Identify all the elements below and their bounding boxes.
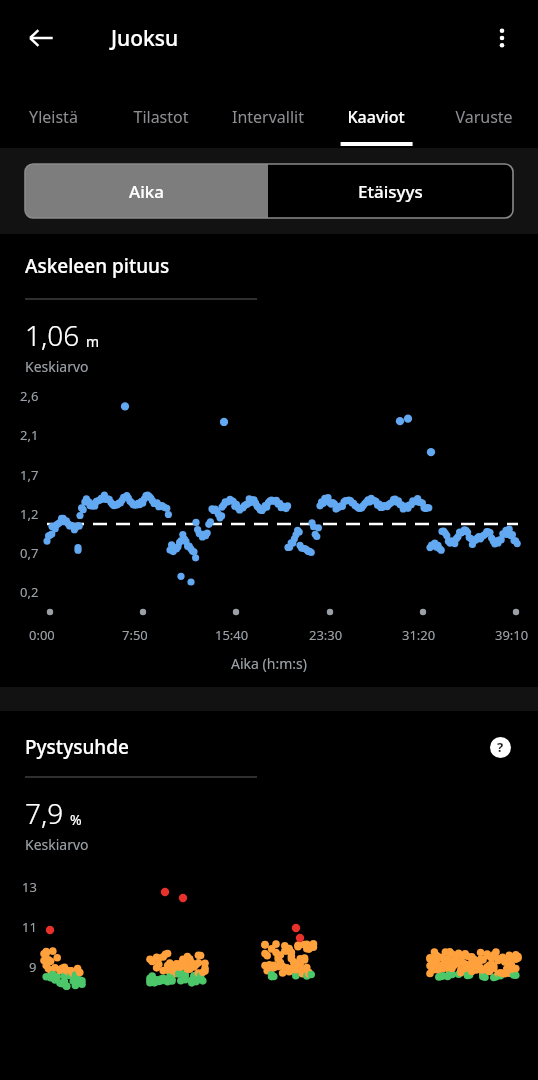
staticText: 0:00 [29,626,55,644]
staticText: Etäisyys [358,180,423,203]
staticText: Intervallit [232,106,304,128]
staticText: 2,1 [20,426,39,444]
button[interactable]: Intervallit [214,76,322,148]
staticText: 39:10 [495,626,529,644]
staticText: Aika [129,180,164,203]
button[interactable]: Aika [25,164,268,218]
staticText: 1,06 [25,316,80,354]
button[interactable]: Tilastot [107,76,214,148]
staticText: 7,9 [25,794,64,832]
staticText: Juoksu [111,24,179,53]
staticText: 2,6 [20,387,39,405]
button[interactable]: More options [476,12,528,64]
staticText: Yleistä [29,106,78,128]
staticText: 23:30 [309,626,343,644]
button[interactable]: Back [14,11,68,65]
staticText: 15:40 [215,626,249,644]
staticText: 9 [29,958,37,976]
staticText: Askeleen pituus [25,253,170,279]
button[interactable]: Help [484,731,516,763]
button[interactable]: Kaaviot [322,76,430,148]
staticText: 11 [22,918,37,936]
staticText: Pystysuhde [25,734,129,760]
staticText: 0,7 [20,544,39,562]
staticText: 1,2 [20,505,39,523]
staticText: 7:50 [122,626,148,644]
staticText: Varuste [455,106,513,128]
staticText: m [86,332,100,351]
staticText: ? [497,738,504,756]
staticText: 1,7 [20,466,39,484]
staticText: 31:20 [402,626,436,644]
staticText: Aika (h:m:s) [0,654,538,673]
staticText: 0,2 [20,583,39,601]
button[interactable]: Varuste [430,76,538,148]
staticText: Tilastot [133,106,189,128]
staticText: 13 [22,878,37,896]
staticText: % [70,810,82,829]
button[interactable]: Yleistä [0,76,107,148]
staticText: Keskiarvo [25,835,89,854]
button[interactable]: Etäisyys [268,164,513,218]
staticText: Keskiarvo [25,357,89,376]
staticText: Kaaviot [347,106,405,128]
